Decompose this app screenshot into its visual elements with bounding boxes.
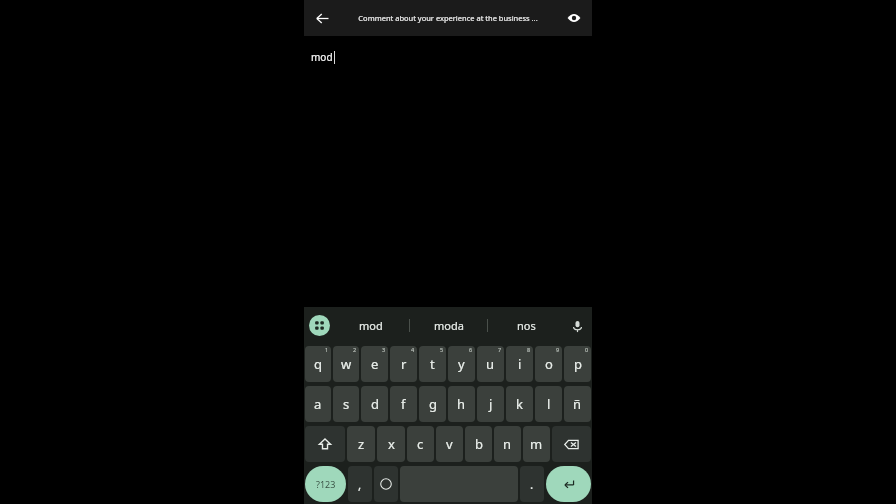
staticText: z <box>358 435 365 453</box>
button[interactable]: c <box>407 426 434 462</box>
button[interactable]: o <box>535 346 562 382</box>
staticText: o <box>545 355 553 373</box>
button[interactable]: Comma <box>348 466 372 502</box>
staticText: 4 <box>411 346 415 353</box>
button[interactable]: v <box>436 426 463 462</box>
button[interactable]: Backspace <box>552 426 591 462</box>
staticText: a <box>314 395 322 413</box>
staticText: 7 <box>498 346 502 353</box>
button[interactable]: x <box>377 426 405 462</box>
button[interactable]: q <box>305 346 331 382</box>
button[interactable]: k <box>506 386 533 422</box>
staticText: q <box>314 355 322 373</box>
button[interactable]: r <box>390 346 417 382</box>
button[interactable]: Gboard menu <box>307 313 332 338</box>
staticText: 1 <box>325 346 329 353</box>
staticText: x <box>388 435 395 453</box>
button[interactable]: mod <box>332 307 409 344</box>
button[interactable]: Back <box>304 0 340 36</box>
button[interactable]: u <box>477 346 504 382</box>
button[interactable]: ?123 <box>305 466 346 502</box>
staticText: f <box>401 395 406 413</box>
staticText: g <box>429 395 437 413</box>
staticText: 8 <box>527 346 531 353</box>
staticText: d <box>371 395 379 413</box>
button[interactable]: Period <box>520 466 544 502</box>
button[interactable]: j <box>477 386 504 422</box>
staticText: w <box>341 355 352 373</box>
staticText: 6 <box>469 346 473 353</box>
button[interactable]: g <box>419 386 446 422</box>
button[interactable]: m <box>523 426 550 462</box>
staticText: 3 <box>382 346 386 353</box>
button[interactable]: z <box>347 426 375 462</box>
button[interactable]: p <box>564 346 591 382</box>
button[interactable]: s <box>333 386 359 422</box>
button[interactable]: f <box>390 386 417 422</box>
staticText: h <box>457 395 466 413</box>
staticText: t <box>430 355 435 373</box>
staticText: i <box>518 355 522 373</box>
staticText: 0 <box>585 346 589 353</box>
staticText: c <box>417 435 424 453</box>
button[interactable]: moda <box>410 307 487 344</box>
staticText: 2 <box>353 346 357 353</box>
button[interactable]: e <box>361 346 388 382</box>
staticText: b <box>475 435 483 453</box>
staticText: s <box>343 395 350 413</box>
staticText: Comment about your experience at the bus… <box>344 13 552 23</box>
staticText: , <box>358 476 362 492</box>
button[interactable]: n <box>494 426 521 462</box>
button[interactable]: d <box>361 386 388 422</box>
staticText: r <box>401 355 407 373</box>
button[interactable]: ñ <box>564 386 591 422</box>
button[interactable]: Toggle visibility <box>556 0 592 36</box>
button[interactable]: w <box>333 346 359 382</box>
staticText: e <box>371 355 379 373</box>
staticText: y <box>458 355 465 373</box>
staticText: nos <box>517 318 536 333</box>
staticText: mod <box>359 318 383 333</box>
staticText: l <box>547 395 551 413</box>
button[interactable]: i <box>506 346 533 382</box>
staticText: ñ <box>573 395 582 413</box>
button[interactable]: a <box>305 386 331 422</box>
button[interactable]: l <box>535 386 562 422</box>
staticText: ?123 <box>316 478 336 490</box>
button[interactable]: y <box>448 346 475 382</box>
staticText: j <box>489 395 493 413</box>
button[interactable]: t <box>419 346 446 382</box>
staticText: m <box>530 435 543 453</box>
button[interactable]: b <box>465 426 492 462</box>
staticText: k <box>516 395 523 413</box>
button[interactable]: h <box>448 386 475 422</box>
staticText: mod <box>311 50 333 64</box>
button[interactable]: nos <box>488 307 565 344</box>
button[interactable]: Voice input <box>565 314 589 338</box>
button[interactable]: Shift <box>305 426 345 462</box>
staticText: n <box>503 435 512 453</box>
button[interactable]: Enter <box>546 466 591 502</box>
staticText: . <box>530 476 534 492</box>
staticText: 9 <box>556 346 560 353</box>
staticText: p <box>574 355 582 373</box>
staticText: 5 <box>440 346 444 353</box>
staticText: u <box>486 355 495 373</box>
button[interactable]: Emoji <box>374 466 398 502</box>
staticText: moda <box>434 318 464 333</box>
staticText: v <box>446 435 453 453</box>
